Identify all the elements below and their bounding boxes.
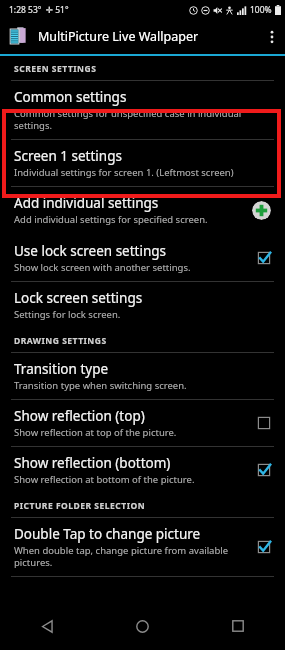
staticText: Add individual settings: [14, 194, 159, 212]
staticText: Transition type: [14, 360, 109, 378]
button[interactable]: Recent apps: [190, 602, 285, 650]
staticText: Individual settings for screen 1. (Leftm…: [14, 166, 234, 179]
button[interactable]: Show reflection (top): [0, 400, 285, 446]
staticText: Double Tap to change picture: [14, 525, 201, 543]
button[interactable]: Add individual settings: [0, 187, 285, 233]
button[interactable]: Use lock screen settings: [0, 235, 285, 281]
staticText: PICTURE FOLDER SELECTION: [14, 500, 146, 512]
button[interactable]: Back: [0, 602, 95, 650]
button[interactable]: Screen 1 settings: [0, 140, 285, 186]
staticText: Show reflection at top of the picture.: [14, 426, 177, 439]
button[interactable]: Lock screen settings: [0, 282, 285, 328]
staticText: 100%: [250, 4, 272, 16]
staticText: SCREEN SETTINGS: [14, 63, 97, 75]
staticText: Settings for lock screen.: [14, 308, 121, 321]
staticText: When double tap, change picture from ava…: [14, 544, 249, 569]
staticText: Use lock screen settings: [14, 242, 167, 260]
staticText: Lock screen settings: [14, 289, 143, 307]
staticText: Common settings for unspecified case in …: [14, 107, 275, 132]
button[interactable]: Common settings: [0, 81, 285, 139]
staticText: Show lock screen with another settings.: [14, 261, 191, 274]
staticText: Show reflection (bottom): [14, 454, 171, 472]
button[interactable]: Double Tap to change picture: [0, 518, 285, 576]
staticText: Show reflection (top): [14, 407, 145, 425]
staticText: DRAWING SETTINGS: [14, 335, 107, 347]
staticText: Screen 1 settings: [14, 147, 122, 165]
button[interactable]: Transition type: [0, 353, 285, 399]
button[interactable]: More options: [259, 19, 285, 54]
staticText: Transition type when switching screen.: [14, 379, 187, 392]
button[interactable]: Show reflection (bottom): [0, 447, 285, 493]
staticText: Common settings: [14, 88, 127, 106]
staticText: Add individual settings for specified sc…: [14, 213, 208, 226]
button[interactable]: Add: [252, 201, 271, 220]
staticText: Show reflection at bottom of the picture…: [14, 473, 195, 486]
staticText: MultiPicture Live Wallpaper: [38, 28, 259, 45]
staticText: 1:28 53° ✛ 51°: [9, 4, 69, 16]
button[interactable]: Home: [95, 602, 190, 650]
